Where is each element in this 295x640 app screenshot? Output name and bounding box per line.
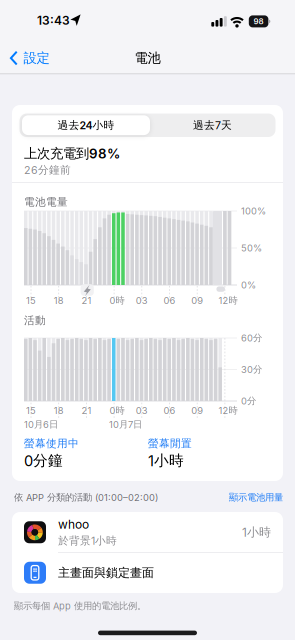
button[interactable]: 過去24小時 (22, 113, 150, 137)
staticText: 09 (191, 405, 203, 416)
staticText: 依 APP 分類的活動 (01:00–02:00) (14, 492, 158, 503)
staticText: 03 (136, 405, 148, 416)
staticText: 10月6日 (24, 419, 58, 430)
staticText: 0分 (241, 395, 256, 407)
staticText: 50% (241, 242, 262, 253)
staticText: 10月7日 (109, 419, 142, 430)
staticText: 15 (26, 295, 36, 306)
staticText: 100% (241, 205, 266, 216)
staticText: 活動 (24, 314, 46, 327)
staticText: 過去24小時 (57, 119, 114, 132)
staticText: 1小時 (242, 525, 271, 540)
staticText: 21 (81, 405, 91, 416)
staticText: 60分 (241, 332, 262, 344)
staticText: 13:43 (37, 13, 70, 28)
staticText: 顯示電池用量 (229, 492, 283, 503)
staticText: 電池電量 (24, 195, 68, 208)
staticText: 98 (254, 17, 264, 26)
staticText: 於背景1小時 (58, 534, 117, 547)
staticText: 18 (54, 295, 64, 306)
staticText: 0% (241, 279, 256, 290)
staticText: 顯示每個 App 使用的電池比例。 (14, 600, 146, 612)
staticText: 上次充電到98% (24, 145, 120, 162)
staticText: 12時 (218, 405, 237, 416)
staticText: 06 (163, 405, 175, 416)
staticText: 設定 (23, 50, 49, 66)
staticText: 0時 (110, 295, 125, 306)
staticText: 1小時 (148, 451, 184, 469)
staticText: 螢幕閒置 (148, 437, 192, 450)
staticText: 06 (163, 295, 175, 306)
staticText: 26分鐘前 (24, 163, 71, 176)
staticText: 15 (26, 405, 36, 416)
staticText: 30分 (241, 364, 262, 375)
staticText: 09 (191, 295, 203, 306)
staticText: 0時 (110, 405, 125, 416)
button[interactable]: 主畫面與鎖定畫面 (12, 552, 283, 593)
staticText: 12時 (218, 295, 237, 306)
staticText: 主畫面與鎖定畫面 (58, 565, 154, 580)
staticText: 螢幕使用中 (24, 437, 79, 450)
staticText: 過去7天 (193, 119, 232, 132)
button[interactable]: 過去7天 (149, 113, 275, 137)
staticText: 21 (81, 295, 91, 306)
staticText: 0分鐘 (24, 451, 63, 469)
button[interactable]: whoo (12, 512, 283, 552)
staticText: 03 (136, 295, 148, 306)
button[interactable]: 顯示電池用量 (229, 492, 283, 503)
button[interactable]: 返回設定 (9, 43, 49, 72)
staticText: whoo (58, 517, 89, 532)
staticText: 18 (54, 405, 64, 416)
staticText: 電池 (134, 50, 160, 66)
